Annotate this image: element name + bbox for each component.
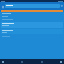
button[interactable]	[1, 29, 63, 34]
button[interactable]	[2, 36, 62, 37]
button[interactable]: Alerts	[40, 60, 44, 64]
button[interactable]: Search	[61, 5, 63, 7]
button[interactable]	[5, 4, 60, 8]
button[interactable]: Explore	[20, 60, 24, 64]
button[interactable]	[2, 13, 62, 20]
button[interactable]	[1, 22, 63, 28]
button[interactable]: Menu	[1, 5, 4, 8]
button[interactable]: Home	[1, 60, 5, 64]
button[interactable]: Profile	[59, 60, 63, 64]
